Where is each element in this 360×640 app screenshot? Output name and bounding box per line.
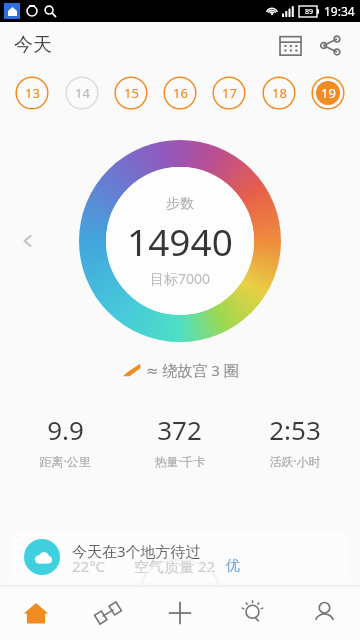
button[interactable]: Add [144,586,216,640]
staticText: 89 [305,7,314,17]
button[interactable]: 19 [311,76,345,110]
button[interactable]: 15 [114,76,148,110]
button[interactable]: 9.9 [8,412,122,469]
staticText: ≈ 绕故宫 3 圈 [146,360,239,380]
staticText: 22°C [72,556,106,576]
staticText: 19:34 [324,3,355,19]
button[interactable]: Share [310,25,350,65]
staticText: 活跃·小时 [269,453,321,469]
button[interactable]: 372 [122,412,237,469]
button[interactable]: 17 [212,76,246,110]
button[interactable]: ≈ 绕故宫 3 圈 [121,360,239,380]
staticText: 今天在3个地方待过 [72,541,201,561]
staticText: 今天 [14,33,52,57]
staticText: 步数 [166,195,194,213]
staticText: 优 [226,557,240,575]
button[interactable]: 18 [262,76,296,110]
button[interactable]: 13 [15,76,49,110]
button[interactable]: Discover [216,586,288,640]
staticText: 空气质量 22 [134,556,216,576]
staticText: 距离·公里 [39,453,91,469]
staticText: 13 [25,84,40,102]
staticText: 热量·千卡 [154,453,206,469]
staticText: 9.9 [47,412,84,447]
staticText: 15 [124,84,139,102]
button[interactable]: Previous day [18,231,38,251]
button[interactable]: 16 [163,76,197,110]
staticText: 目标7000 [150,269,211,288]
staticText: 14940 [127,216,233,266]
button[interactable]: Profile [288,586,360,640]
staticText: 14 [75,84,90,102]
staticText: 16 [173,84,188,102]
button[interactable]: 2:53 [237,412,352,469]
button[interactable]: 步数 [106,167,254,315]
button[interactable]: Calendar [270,25,310,65]
staticText: 19 [321,84,336,102]
button[interactable]: 今天在3个地方待过 [10,532,350,582]
button[interactable]: 14 [65,76,99,110]
staticText: 18 [272,84,287,102]
button[interactable]: Home [0,586,72,640]
button[interactable]: Workout [72,586,144,640]
staticText: 17 [222,84,237,102]
staticText: 372 [157,412,202,447]
staticText: 2:53 [269,412,321,447]
